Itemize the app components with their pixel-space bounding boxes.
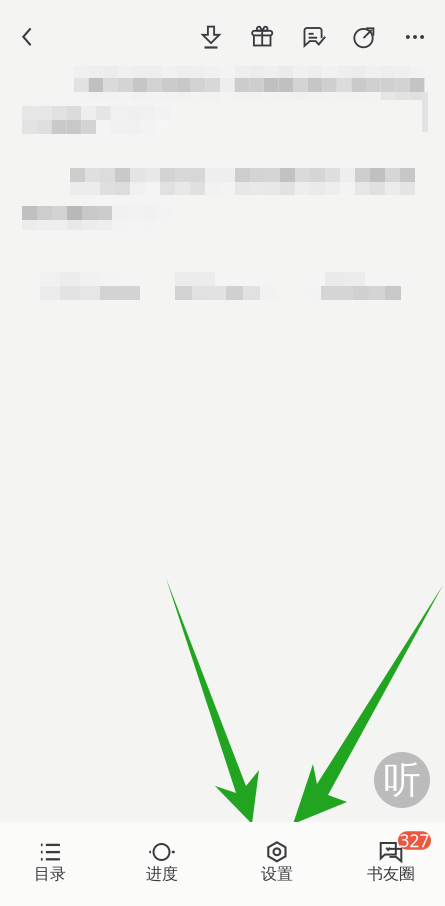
staticText: 听: [383, 757, 420, 803]
button[interactable]: Comments: [293, 15, 337, 59]
staticText: 327: [399, 829, 429, 852]
button[interactable]: 进度: [106, 822, 217, 906]
button[interactable]: 设置: [221, 822, 332, 906]
staticText: 进度: [146, 864, 178, 884]
button[interactable]: 书友圈: [335, 822, 445, 906]
button[interactable]: Share: [342, 15, 386, 59]
button[interactable]: Download: [189, 15, 233, 59]
button[interactable]: More: [393, 15, 437, 59]
button[interactable]: Listen: [374, 752, 430, 808]
button[interactable]: Gift: [240, 15, 284, 59]
button[interactable]: 目录: [0, 822, 105, 906]
staticText: 书友圈: [367, 864, 415, 884]
button[interactable]: Back: [5, 15, 49, 59]
staticText: 目录: [34, 864, 66, 884]
staticText: 设置: [261, 864, 293, 884]
